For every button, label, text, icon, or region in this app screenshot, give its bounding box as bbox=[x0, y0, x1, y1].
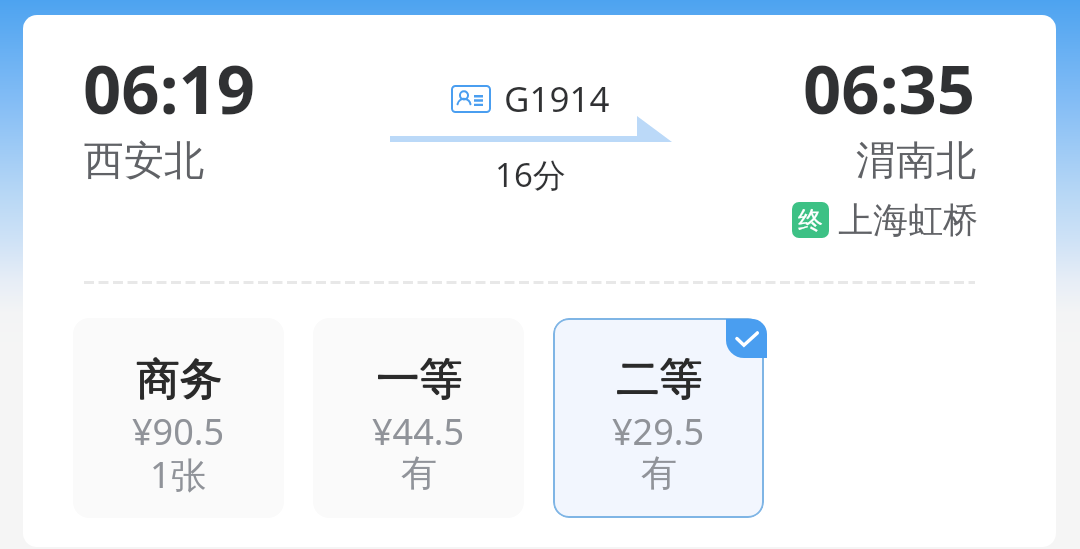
staticText: ¥44.5 bbox=[372, 407, 465, 456]
other: Journey direction bbox=[390, 115, 672, 145]
staticText: 上海虹桥 bbox=[838, 198, 978, 242]
staticText: 一等 bbox=[377, 352, 463, 406]
button[interactable]: 商务 bbox=[73, 318, 284, 518]
staticText: ¥29.5 bbox=[612, 407, 705, 456]
other: Selected bbox=[726, 319, 767, 358]
staticText: 06:35 bbox=[803, 42, 976, 133]
staticText: 渭南北 bbox=[856, 135, 976, 185]
staticText: 商务 bbox=[137, 353, 223, 407]
staticText: 二等 bbox=[617, 352, 703, 406]
staticText: 二等 bbox=[616, 353, 702, 407]
staticText: 西安北 bbox=[84, 135, 204, 185]
staticText: 二等 bbox=[617, 353, 703, 407]
staticText: 1张 bbox=[150, 450, 207, 499]
other: Train service info bbox=[451, 85, 491, 113]
staticText: 商务 bbox=[136, 353, 222, 407]
staticText: 一等 bbox=[376, 352, 462, 406]
staticText: 商务 bbox=[137, 352, 223, 406]
staticText: 有 bbox=[401, 450, 437, 495]
staticText: 有 bbox=[641, 450, 677, 495]
button[interactable]: 06:19 bbox=[23, 15, 1056, 547]
staticText: 一等 bbox=[376, 353, 462, 407]
staticText: 商务 bbox=[136, 352, 222, 406]
staticText: 二等 bbox=[616, 352, 702, 406]
staticText: 终 bbox=[798, 205, 823, 236]
button[interactable]: 一等 bbox=[313, 318, 524, 518]
staticText: ¥90.5 bbox=[132, 407, 225, 456]
staticText: 一等 bbox=[377, 353, 463, 407]
button[interactable]: 二等 bbox=[553, 318, 764, 518]
button[interactable]: Train service info bbox=[451, 75, 610, 123]
staticText: 16分 bbox=[495, 152, 566, 197]
staticText: G1914 bbox=[504, 75, 610, 123]
staticText: 06:19 bbox=[83, 42, 256, 133]
